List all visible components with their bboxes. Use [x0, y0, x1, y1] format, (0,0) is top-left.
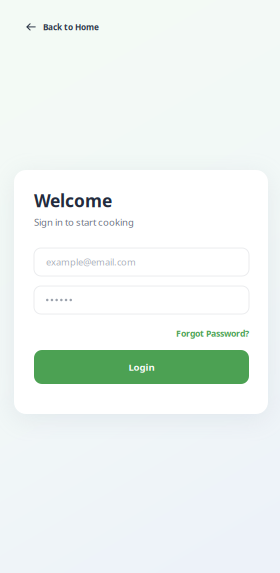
staticText: example@email.com [46, 256, 136, 268]
staticText: Forgot Password? [176, 328, 249, 339]
staticText: Login [128, 360, 154, 374]
staticText: Welcome [34, 189, 112, 212]
staticText: Sign in to start cooking [34, 215, 134, 229]
button[interactable]: Forgot Password? [34, 328, 249, 339]
staticText: Back to Home [43, 21, 99, 33]
button[interactable]: Back to Home [11, 11, 111, 43]
button[interactable]: Login [34, 350, 249, 384]
